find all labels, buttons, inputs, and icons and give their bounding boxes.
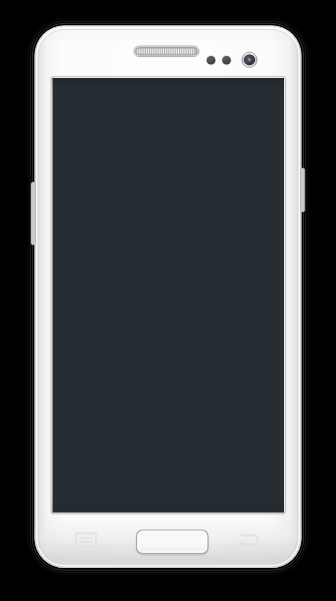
button[interactable]: Home — [136, 529, 208, 555]
button[interactable]: Menu — [66, 526, 104, 554]
button[interactable]: Back — [228, 526, 266, 554]
